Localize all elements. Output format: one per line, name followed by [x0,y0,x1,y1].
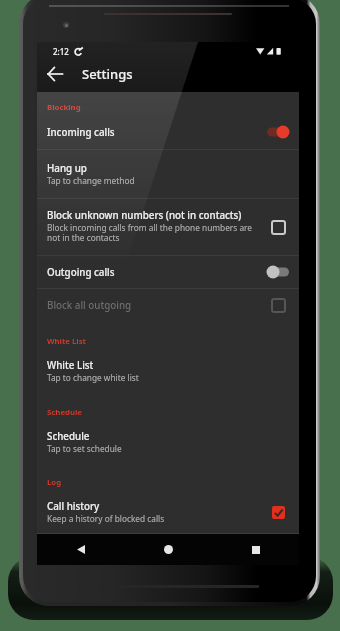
staticText: Block incoming calls from all the phone … [47,222,263,244]
staticText: Call history [47,500,100,513]
button[interactable]: Call history [37,487,299,536]
button[interactable]: Schedule [37,417,299,466]
button[interactable]: Hang up [37,149,299,198]
button[interactable]: Block unknown numbers (not in contacts) [37,198,299,255]
staticText: Block unknown numbers (not in contacts) [47,209,242,222]
staticText: White List [47,336,86,347]
staticText: Blocking [47,102,81,113]
staticText: Hang up [47,162,87,175]
staticText: Schedule [47,430,90,443]
button[interactable]: Block all outgoing [37,288,299,322]
button[interactable]: Toggle incoming calls [266,124,290,140]
staticText: Block all outgoing [47,299,132,312]
staticText: Tap to set schedule [47,443,122,454]
staticText: White List [47,359,94,372]
button[interactable]: Home [125,534,212,565]
staticText: Log [47,477,62,488]
staticText: Schedule [47,407,83,418]
button[interactable]: Checkbox [268,295,288,315]
button[interactable]: Checkbox [268,217,288,237]
button[interactable]: Recent apps [212,534,299,565]
staticText: 2:12 [53,46,69,57]
button[interactable]: Incoming calls [37,120,299,149]
staticText: Tap to change method [47,175,135,186]
button[interactable]: Outgoing calls [37,255,299,289]
button[interactable]: Checkbox checked [268,502,288,522]
button[interactable]: White List [37,346,299,395]
button[interactable]: Toggle outgoing calls [266,264,290,280]
button[interactable]: Back [37,534,125,565]
staticText: Tap to change white list [47,372,139,383]
staticText: Incoming calls [47,126,115,139]
button[interactable]: Back [42,61,68,87]
staticText: Outgoing calls [47,266,115,279]
staticText: Settings [82,65,133,83]
staticText: Keep a history of blocked calls [47,513,165,524]
